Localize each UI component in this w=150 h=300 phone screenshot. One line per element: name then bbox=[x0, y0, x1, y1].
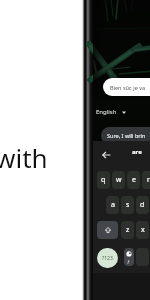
button[interactable]: are bbox=[132, 148, 142, 156]
button[interactable]: a bbox=[106, 196, 119, 214]
staticText: s bbox=[126, 200, 130, 210]
staticText: e bbox=[132, 175, 136, 185]
staticText: d bbox=[140, 200, 145, 210]
button[interactable]: d bbox=[136, 196, 149, 214]
button[interactable]: w bbox=[112, 171, 125, 189]
staticText: q bbox=[101, 175, 106, 185]
staticText: ?123 bbox=[102, 255, 113, 262]
button[interactable]: English bbox=[96, 108, 126, 116]
button[interactable]: e bbox=[127, 171, 140, 189]
staticText: are bbox=[132, 148, 142, 156]
button[interactable]: z bbox=[121, 221, 134, 239]
button[interactable]: q bbox=[97, 171, 110, 189]
staticText: with bbox=[0, 140, 48, 175]
button[interactable] bbox=[136, 248, 149, 266]
staticText: Sure, I will brin bbox=[107, 132, 146, 139]
button[interactable]: ?123 bbox=[97, 248, 118, 268]
staticText: English bbox=[96, 108, 117, 116]
staticText: w bbox=[116, 175, 122, 185]
button[interactable]: Sure, I will brin bbox=[101, 127, 150, 144]
button[interactable]: s bbox=[121, 196, 134, 214]
staticText: Bien sûr, je va bbox=[110, 84, 146, 91]
staticText: r bbox=[147, 175, 150, 185]
button[interactable]: r bbox=[142, 171, 150, 189]
button[interactable]: Shift bbox=[97, 221, 118, 239]
button[interactable]: Bien sûr, je va bbox=[103, 78, 150, 96]
staticText: x bbox=[141, 225, 145, 235]
button[interactable]: Emoji bbox=[124, 248, 134, 266]
staticText: a bbox=[111, 200, 115, 210]
staticText: z bbox=[126, 225, 130, 235]
button[interactable]: Back bbox=[99, 146, 113, 164]
button[interactable]: x bbox=[136, 221, 149, 239]
